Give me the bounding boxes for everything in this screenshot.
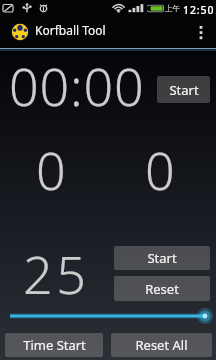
- button[interactable]: Reset All: [111, 333, 212, 357]
- staticText: Start: [147, 249, 177, 267]
- staticText: 12:50: [183, 3, 215, 17]
- staticText: 25: [23, 238, 90, 309]
- button[interactable]: Start: [114, 246, 210, 270]
- staticText: 00:00: [9, 50, 145, 121]
- staticText: Start: [169, 81, 199, 99]
- staticText: 0: [36, 134, 66, 205]
- button[interactable]: More options: [186, 17, 216, 48]
- button[interactable]: Start: [157, 76, 210, 103]
- staticText: Time Start: [23, 336, 86, 354]
- staticText: 上午: [165, 4, 180, 13]
- staticText: Reset All: [135, 336, 188, 354]
- button[interactable]: Time Start: [5, 333, 103, 357]
- button[interactable]: Reset: [114, 276, 210, 301]
- button[interactable]: [0, 306, 216, 326]
- staticText: Reset: [145, 280, 179, 298]
- staticText: 0: [145, 134, 175, 205]
- staticText: Korfball Tool: [35, 22, 106, 38]
